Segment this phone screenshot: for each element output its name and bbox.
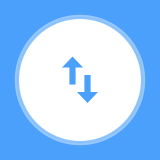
- button[interactable]: Transfer: [0, 0, 160, 160]
